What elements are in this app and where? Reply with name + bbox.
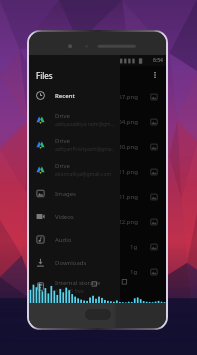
button[interactable]: Drive <box>29 107 120 132</box>
staticText: adityanPrivityashi@gma.. <box>55 146 115 153</box>
staticText: 1g <box>130 268 138 276</box>
staticText: Downloads <box>55 259 87 267</box>
button[interactable]: Images <box>29 182 120 205</box>
button[interactable]: Audio <box>29 228 120 251</box>
staticText: -211.png <box>113 168 138 176</box>
staticText: Audio <box>55 236 72 244</box>
staticText: -230.png <box>113 143 138 151</box>
staticText: adityaaaditya rami@gmail.com <box>55 121 116 128</box>
button[interactable]: -322.png <box>29 209 166 234</box>
button[interactable]: Videos <box>29 205 120 228</box>
staticText: Drive <box>55 162 70 170</box>
button[interactable]: Internal storage <box>29 274 120 299</box>
staticText: ekonna9iya@gmail.com <box>55 171 112 178</box>
button[interactable]: -357.png <box>29 84 166 109</box>
staticText: Recent <box>55 92 75 100</box>
staticText: -322.png <box>113 218 138 226</box>
button[interactable]: -304.png <box>29 109 166 134</box>
button[interactable]: Drive <box>29 157 120 182</box>
button[interactable]: Recent <box>29 84 120 107</box>
staticText: Videos <box>55 213 74 221</box>
button[interactable]: 1g <box>29 234 166 259</box>
staticText: Drive <box>55 137 70 145</box>
staticText: -357.png <box>113 93 138 101</box>
button[interactable]: -230.png <box>29 134 166 159</box>
staticText: 6:54 <box>153 57 163 64</box>
button[interactable]: Downloads <box>29 251 120 274</box>
button[interactable]: -211.png <box>29 159 166 184</box>
staticText: -304.png <box>113 118 138 126</box>
staticText: -251.png <box>113 193 138 201</box>
staticText: 4.21 GB free <box>55 288 84 295</box>
button[interactable]: More options <box>146 66 164 84</box>
button[interactable]: -251.png <box>29 184 166 209</box>
button[interactable]: Drive <box>29 132 120 157</box>
staticText: 1g <box>130 243 138 251</box>
staticText: Internal storage <box>55 279 101 287</box>
staticText: Files <box>36 70 53 81</box>
button[interactable]: 1g <box>29 259 166 284</box>
staticText: Drive <box>55 112 70 120</box>
staticText: Images <box>55 190 76 198</box>
